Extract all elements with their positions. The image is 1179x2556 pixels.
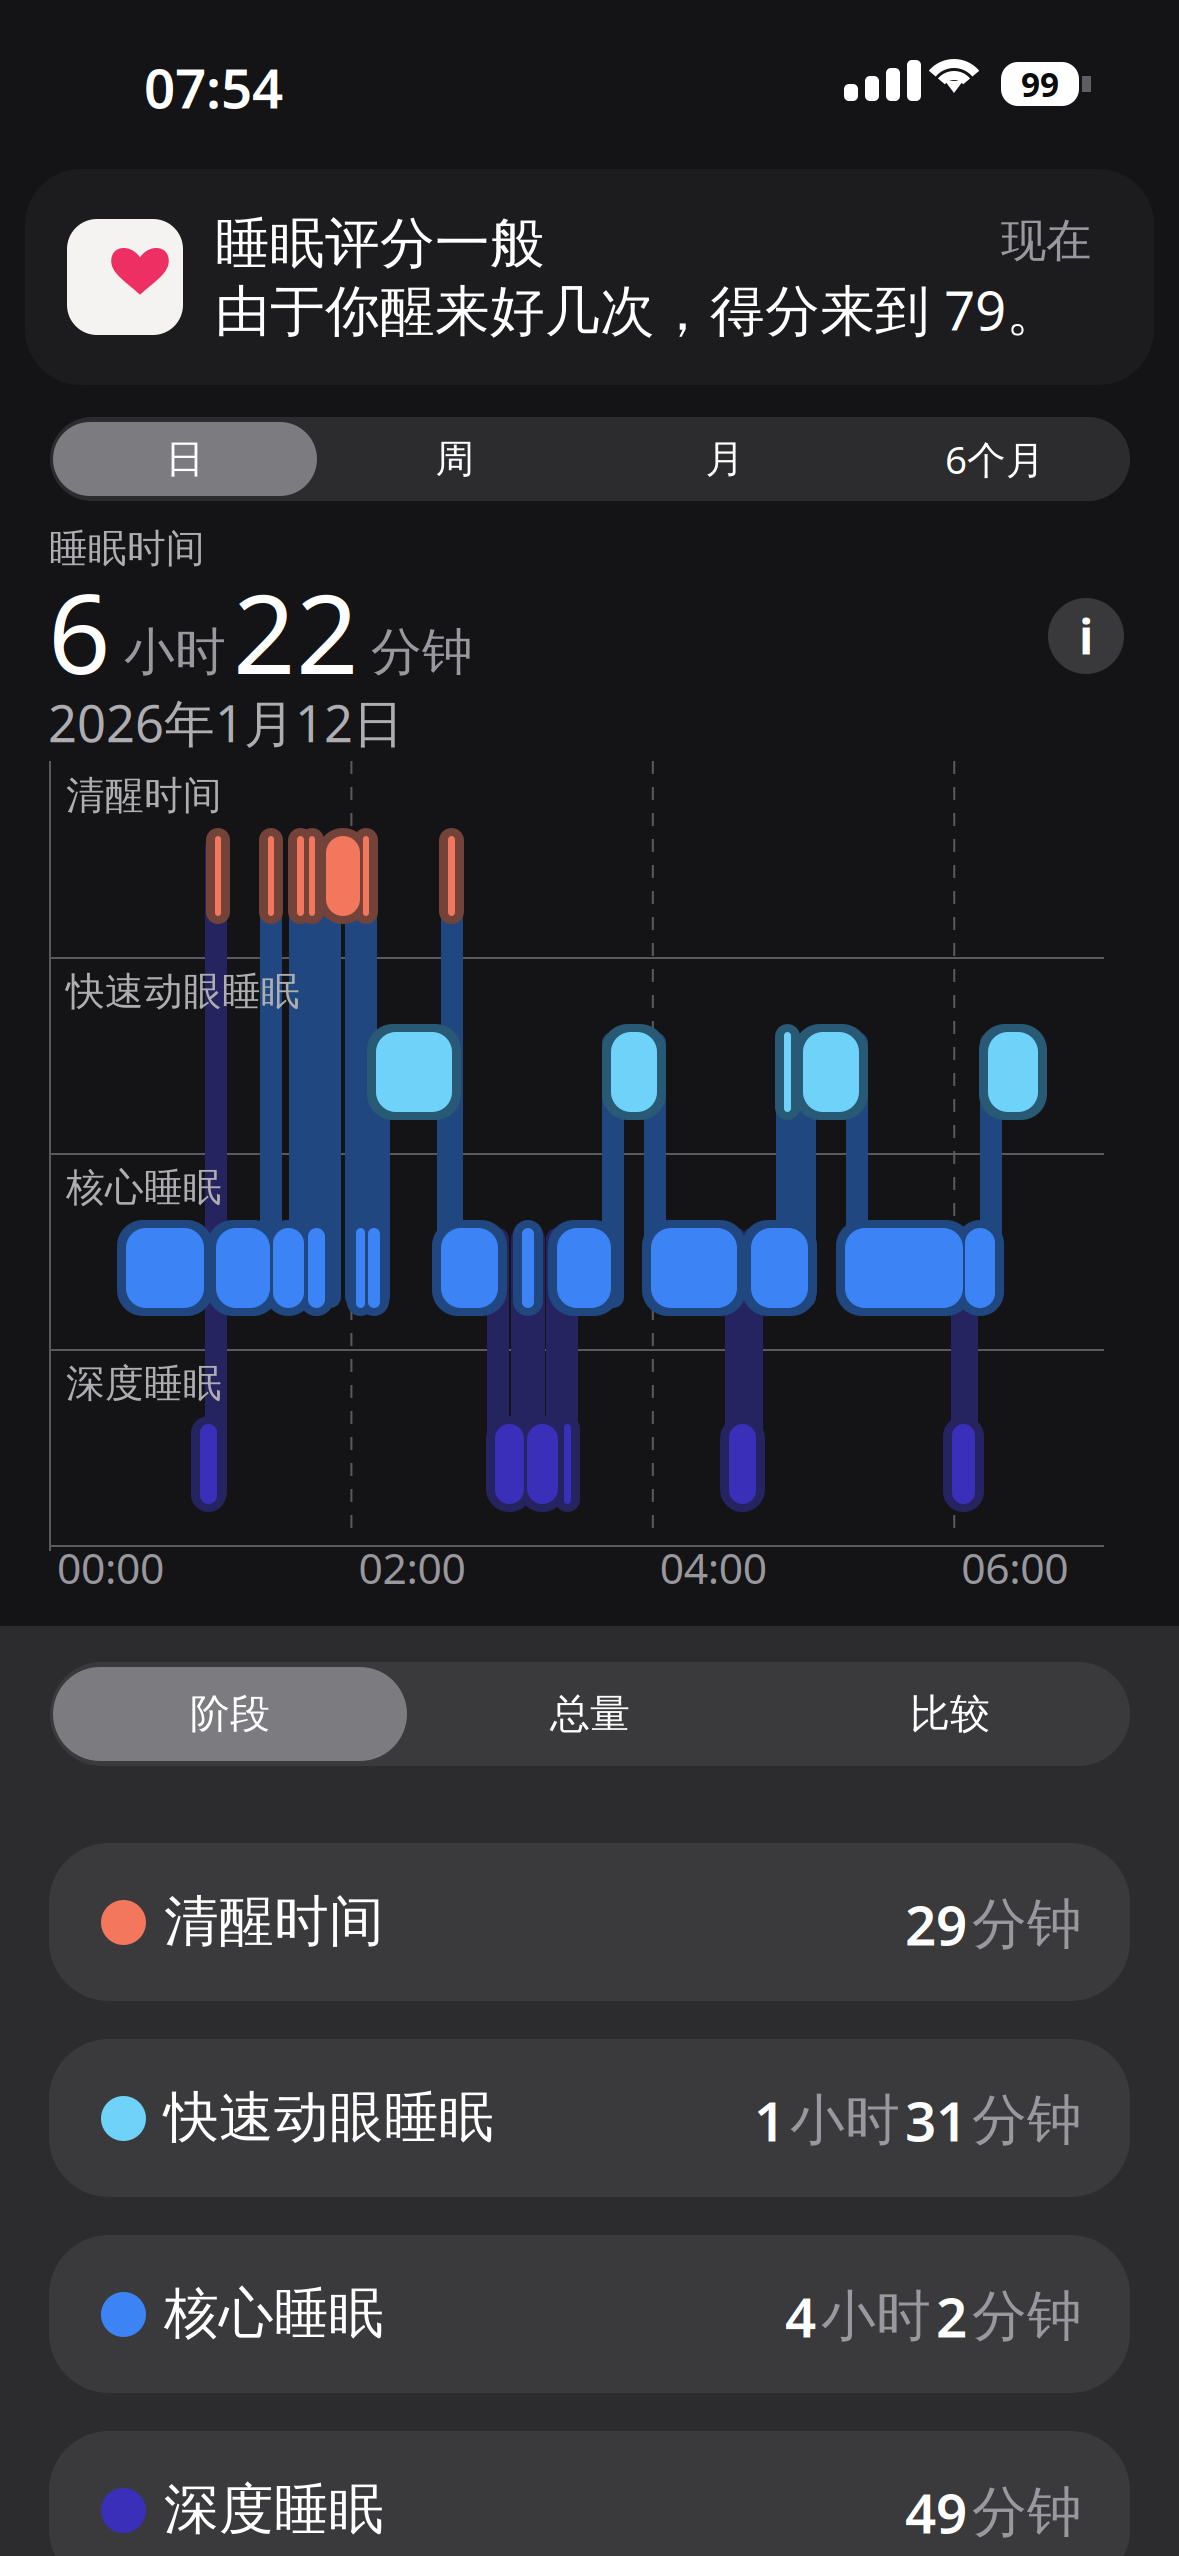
- staticText: 分钟: [972, 2087, 1082, 2154]
- staticText: 22: [233, 559, 359, 704]
- button[interactable]: 睡眠评分一般: [25, 169, 1154, 385]
- staticText: 分钟: [972, 2479, 1082, 2546]
- staticText: 由于你醒来好几次，得分来到 79。: [215, 273, 1061, 346]
- staticText: 31: [905, 2084, 967, 2157]
- staticText: 现在: [1001, 213, 1091, 269]
- staticText: 分钟: [972, 1891, 1082, 1958]
- staticText: 小时: [790, 2087, 900, 2154]
- staticText: 02:00: [358, 1539, 465, 1596]
- staticText: 00:00: [57, 1539, 164, 1596]
- staticText: 总量: [550, 1689, 630, 1738]
- button[interactable]: More information: [1048, 598, 1124, 674]
- staticText: 深度睡眠: [164, 2476, 384, 2543]
- staticText: 睡眠评分一般: [215, 210, 545, 277]
- staticText: 49: [905, 2476, 967, 2549]
- staticText: 核心睡眠: [66, 1164, 222, 1211]
- button[interactable]: 深度睡眠: [49, 2431, 1130, 2556]
- staticText: 1: [754, 2084, 785, 2157]
- staticText: 29: [905, 1888, 967, 1961]
- staticText: 6个月: [945, 433, 1045, 485]
- button[interactable]: 总量: [410, 1662, 770, 1766]
- staticText: 清醒时间: [164, 1888, 384, 1955]
- staticText: 分钟: [972, 2283, 1082, 2350]
- staticText: 周: [435, 435, 474, 483]
- staticText: 睡眠时间: [49, 525, 205, 572]
- staticText: 04:00: [660, 1539, 767, 1596]
- staticText: 06:00: [961, 1539, 1068, 1596]
- staticText: 小时: [821, 2283, 931, 2350]
- staticText: 99: [1021, 62, 1059, 106]
- staticText: 小时: [124, 621, 226, 683]
- staticText: 2: [936, 2280, 967, 2353]
- button[interactable]: 比较: [770, 1662, 1130, 1766]
- staticText: 清醒时间: [66, 772, 222, 819]
- staticText: 深度睡眠: [66, 1360, 222, 1407]
- staticText: i: [1079, 604, 1093, 668]
- staticText: 阶段: [190, 1689, 270, 1738]
- button[interactable]: 周: [320, 417, 590, 501]
- staticText: 快速动眼睡眠: [164, 2084, 494, 2151]
- button[interactable]: 日: [50, 417, 320, 501]
- staticText: 4: [785, 2280, 816, 2353]
- button[interactable]: 阶段: [50, 1662, 410, 1766]
- staticText: 07:54: [144, 51, 283, 124]
- staticText: 2026年1月12日: [48, 689, 404, 756]
- button[interactable]: 6个月: [860, 417, 1130, 501]
- staticText: 快速动眼睡眠: [66, 968, 300, 1015]
- staticText: 分钟: [371, 621, 473, 683]
- button[interactable]: 核心睡眠: [49, 2235, 1130, 2393]
- staticText: 月: [705, 435, 744, 483]
- button[interactable]: 月: [590, 417, 860, 501]
- staticText: 6: [48, 559, 111, 704]
- staticText: 日: [165, 435, 204, 483]
- staticText: 核心睡眠: [164, 2280, 384, 2347]
- staticText: 比较: [910, 1689, 990, 1738]
- button[interactable]: 快速动眼睡眠: [49, 2039, 1130, 2197]
- button[interactable]: 清醒时间: [49, 1843, 1130, 2001]
